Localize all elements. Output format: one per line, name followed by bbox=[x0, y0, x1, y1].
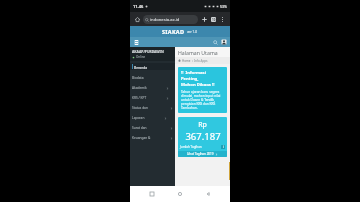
button[interactable]: Recent apps bbox=[146, 188, 158, 200]
button[interactable]: Surat dan Lain2 bbox=[130, 123, 175, 133]
staticText: KRS / KPT bbox=[132, 96, 147, 100]
staticText: Keuangan & Pembayaran bbox=[132, 136, 151, 140]
button[interactable]: Laporan bbox=[130, 113, 175, 123]
button[interactable]: Lihat Tagihan 2019 bbox=[178, 151, 227, 157]
staticText: ver 1.0 bbox=[187, 30, 198, 34]
button[interactable]: More options bbox=[218, 15, 227, 24]
button[interactable]: Akademik bbox=[130, 83, 175, 93]
staticText: Home bbox=[182, 59, 191, 63]
button[interactable]: New tab bbox=[200, 15, 209, 24]
button[interactable]: Rp bbox=[178, 117, 227, 157]
button[interactable]: Tabs bbox=[209, 15, 218, 24]
button[interactable]: KRS / KPT bbox=[130, 93, 175, 103]
staticText: !! Informasi Penting, bbox=[181, 70, 224, 82]
button[interactable]: indonesia.ac.id bbox=[143, 15, 198, 24]
staticText: SIAKAD bbox=[162, 28, 185, 35]
button[interactable]: Home bbox=[133, 15, 142, 24]
staticText: Laporan bbox=[132, 116, 145, 120]
button[interactable]: !! Informasi Penting, bbox=[178, 67, 227, 113]
staticText: Online bbox=[136, 55, 146, 59]
staticText: Status dan Bimbingan bbox=[132, 106, 151, 110]
button[interactable]: Keuangan & Pembayaran bbox=[130, 133, 175, 143]
button[interactable]: Beranda bbox=[130, 63, 175, 70]
staticText: Halaman Utama bbox=[178, 49, 218, 56]
staticText: i bbox=[223, 145, 224, 149]
button[interactable]: Home bbox=[174, 188, 186, 200]
staticText: Rp bbox=[198, 120, 207, 130]
staticText: Akademik bbox=[132, 86, 147, 90]
staticText: Biodata bbox=[132, 76, 144, 80]
staticText: indonesia.ac.id bbox=[150, 17, 180, 23]
staticText: 11.46 bbox=[133, 4, 144, 9]
button[interactable]: Back bbox=[202, 188, 214, 200]
staticText: Surat dan Lain2 bbox=[132, 126, 151, 130]
button[interactable]: Menu bbox=[132, 38, 140, 46]
staticText: 10 bbox=[212, 18, 216, 22]
staticText: › bbox=[192, 59, 193, 63]
staticText: Tahun ajaran baru segera dimulai, mohon … bbox=[181, 90, 224, 110]
staticText: 53% bbox=[220, 4, 227, 9]
staticText: Jumlah Tagihan bbox=[180, 145, 202, 149]
button[interactable]: Biodata bbox=[130, 73, 175, 83]
staticText: AKAAP/PURDAWIN GRNO bbox=[132, 49, 173, 54]
staticText: Lihat Tagihan 2019 bbox=[187, 152, 214, 156]
button[interactable]: Status dan Bimbingan bbox=[130, 103, 175, 113]
staticText: 367.187 bbox=[185, 130, 221, 143]
staticText: Beranda bbox=[134, 65, 148, 69]
button[interactable]: Account bbox=[220, 38, 228, 46]
staticText: Info Apps bbox=[194, 59, 208, 63]
staticText: Mohon Dibaca !! bbox=[181, 82, 215, 88]
button[interactable]: Search bbox=[211, 38, 219, 46]
